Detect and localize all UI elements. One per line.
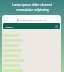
staticText: Lorem ipsum dolor sit amet [12, 3, 52, 7]
staticText: consectetur adipiscing [16, 8, 49, 12]
staticText: Lorem [5, 25, 13, 28]
staticText: Lorem ipsum dolor sit [20, 18, 46, 21]
button[interactable]: Lorem [3, 23, 60, 29]
